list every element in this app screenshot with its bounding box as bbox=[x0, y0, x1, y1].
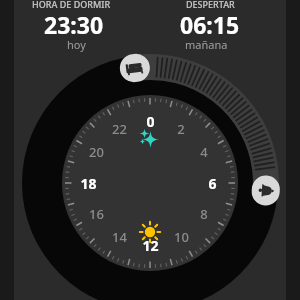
staticText: 0 bbox=[146, 112, 155, 130]
staticText: 16 bbox=[89, 205, 104, 223]
staticText: 8 bbox=[200, 205, 208, 223]
button[interactable]: DESPERTAR bbox=[154, 0, 284, 54]
button[interactable]: Alarm handle bbox=[249, 176, 283, 206]
button[interactable]: HORA DE DORMIR bbox=[16, 0, 146, 54]
staticText: 14 bbox=[112, 228, 127, 246]
staticText: mañana bbox=[185, 37, 228, 52]
staticText: 6 bbox=[208, 174, 217, 192]
staticText: 20 bbox=[89, 143, 104, 161]
staticText: 18 bbox=[80, 174, 97, 192]
staticText: 06:15 bbox=[180, 9, 240, 40]
staticText: 12 bbox=[142, 236, 159, 254]
staticText: 22 bbox=[112, 120, 127, 138]
button[interactable]: Bedtime handle bbox=[118, 53, 152, 83]
staticText: 10 bbox=[174, 228, 189, 246]
staticText: 4 bbox=[200, 143, 208, 161]
staticText: HORA DE DORMIR bbox=[32, 0, 111, 10]
staticText: 23:30 bbox=[44, 9, 104, 40]
staticText: 2 bbox=[177, 120, 185, 138]
staticText: DESPERTAR bbox=[186, 0, 235, 10]
staticText: hoy bbox=[67, 37, 86, 52]
